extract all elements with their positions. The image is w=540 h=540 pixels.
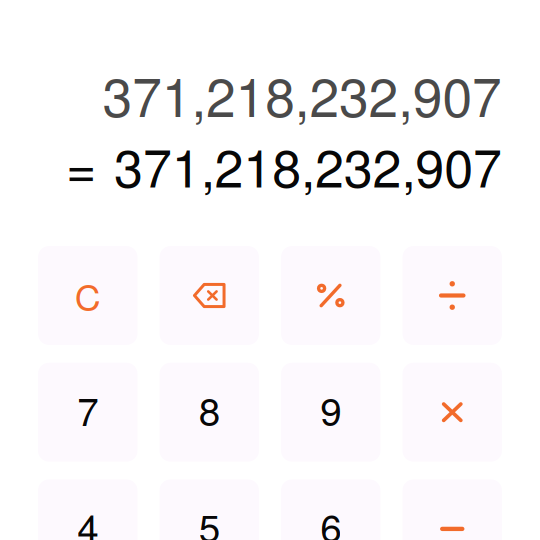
staticText: 8 — [199, 381, 220, 437]
button[interactable]: 9 — [281, 363, 380, 462]
staticText: 5 — [199, 498, 220, 540]
button[interactable]: Divide — [402, 246, 502, 345]
button[interactable]: Subtract — [402, 479, 502, 540]
staticText: 6 — [320, 498, 341, 540]
button[interactable]: 6 — [281, 479, 380, 540]
button[interactable]: Percent — [281, 246, 380, 345]
staticText: 371,218,232,907 — [114, 128, 502, 202]
button[interactable]: 5 — [159, 479, 259, 540]
button[interactable]: 7 — [38, 363, 137, 462]
staticText: 371,218,232,907 — [103, 56, 502, 132]
staticText: 7 — [77, 381, 98, 437]
staticText: = — [66, 128, 96, 202]
button[interactable]: 8 — [159, 363, 259, 462]
staticText: 9 — [320, 381, 341, 437]
button[interactable]: Clear — [38, 246, 137, 345]
button[interactable]: Delete — [159, 246, 259, 345]
button[interactable]: 4 — [38, 479, 137, 540]
staticText: C — [75, 270, 101, 321]
staticText: 4 — [77, 498, 98, 540]
button[interactable]: Multiply — [402, 363, 502, 462]
